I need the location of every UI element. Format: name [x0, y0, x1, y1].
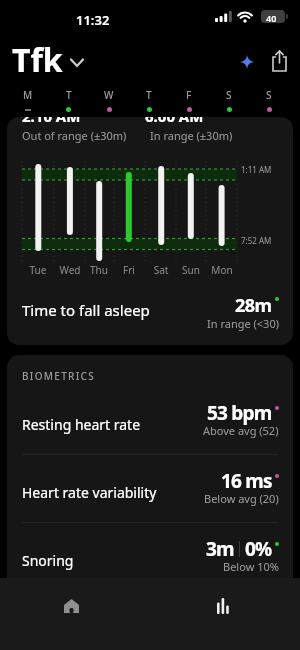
staticText: 1:11 AM [241, 164, 272, 175]
staticText: Tue [21, 263, 55, 277]
button[interactable]: Time to fall asleep [7, 287, 293, 345]
button[interactable]: S [249, 88, 289, 112]
staticText: Below avg (20) [204, 491, 279, 506]
staticText: T [146, 88, 152, 102]
staticText: F [186, 88, 192, 102]
staticText: 11:32 [76, 11, 110, 29]
staticText: T [66, 88, 72, 102]
staticText: Below 10% [223, 559, 279, 574]
staticText: Sun [174, 263, 208, 277]
staticText: Fri [112, 263, 146, 277]
staticText: 53 bpm [207, 400, 272, 426]
button[interactable]: Snoring [7, 527, 293, 593]
staticText: Tfk [12, 38, 63, 82]
staticText: Sat [144, 263, 178, 277]
button[interactable]: T [129, 88, 169, 112]
staticText: S [266, 88, 272, 102]
staticText: W [104, 88, 114, 102]
staticText: Above avg (52) [203, 423, 279, 438]
staticText: BIOMETRICS [22, 369, 95, 383]
staticText: 40 [266, 12, 277, 24]
button[interactable]: Resting heart rate [7, 391, 293, 457]
staticText: 28m [235, 293, 272, 318]
staticText: M [23, 88, 33, 102]
staticText: 6:00 AM [145, 117, 204, 126]
button[interactable] [236, 51, 258, 73]
staticText: 0% [245, 536, 272, 562]
button[interactable]: T [48, 88, 89, 112]
staticText: Time to fall asleep [22, 300, 150, 320]
staticText: Thu [82, 263, 116, 277]
button[interactable] [266, 48, 292, 74]
staticText: 16 ms [221, 468, 272, 494]
staticText: In range (±30m) [150, 128, 233, 143]
staticText: Mon [205, 263, 239, 277]
staticText: Resting heart rate [22, 415, 141, 434]
staticText: 3m [206, 536, 234, 562]
staticText: In range (<30) [207, 316, 279, 331]
staticText: S [226, 88, 232, 102]
staticText: 2:10 AM [22, 117, 81, 126]
staticText: Snoring [22, 551, 74, 570]
staticText: Wed [53, 263, 87, 277]
button[interactable]: F [169, 88, 209, 112]
staticText: Out of range (±30m) [22, 128, 127, 143]
button[interactable] [0, 578, 150, 634]
button[interactable]: Heart rate variability [7, 459, 293, 525]
button[interactable] [150, 578, 300, 634]
staticText: 7:52 AM [241, 235, 272, 246]
button[interactable]: W [89, 88, 129, 112]
staticText: Heart rate variability [22, 483, 157, 502]
button[interactable]: M [7, 88, 48, 109]
button[interactable]: Tfk [12, 38, 83, 82]
button[interactable]: S [209, 88, 249, 112]
